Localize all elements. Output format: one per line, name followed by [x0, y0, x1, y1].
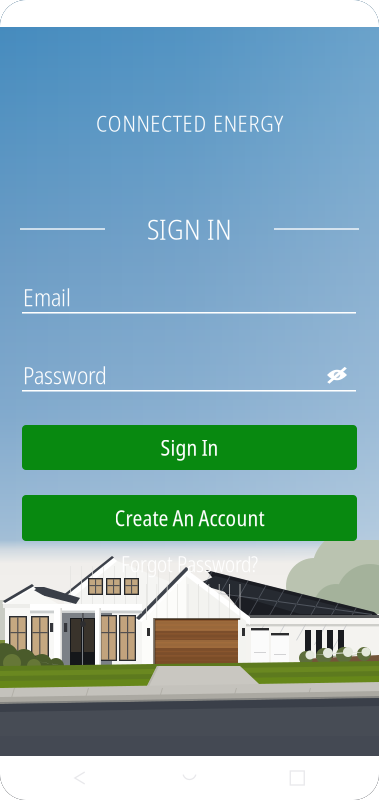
- staticText: Create An Account: [114, 503, 264, 533]
- button[interactable]: Show password: [322, 362, 352, 388]
- staticText: SIGN IN: [147, 210, 232, 248]
- staticText: Password: [23, 359, 107, 391]
- button[interactable]: Forgot Password?: [0, 553, 379, 575]
- staticText: Email: [23, 281, 71, 313]
- staticText: CONNECTED ENERGY: [96, 108, 283, 138]
- button[interactable]: Recent apps: [271, 756, 323, 800]
- staticText: Forgot Password?: [121, 549, 258, 579]
- button[interactable]: Sign In: [22, 425, 357, 470]
- button[interactable]: Create An Account: [22, 495, 357, 541]
- staticText: Sign In: [160, 433, 218, 462]
